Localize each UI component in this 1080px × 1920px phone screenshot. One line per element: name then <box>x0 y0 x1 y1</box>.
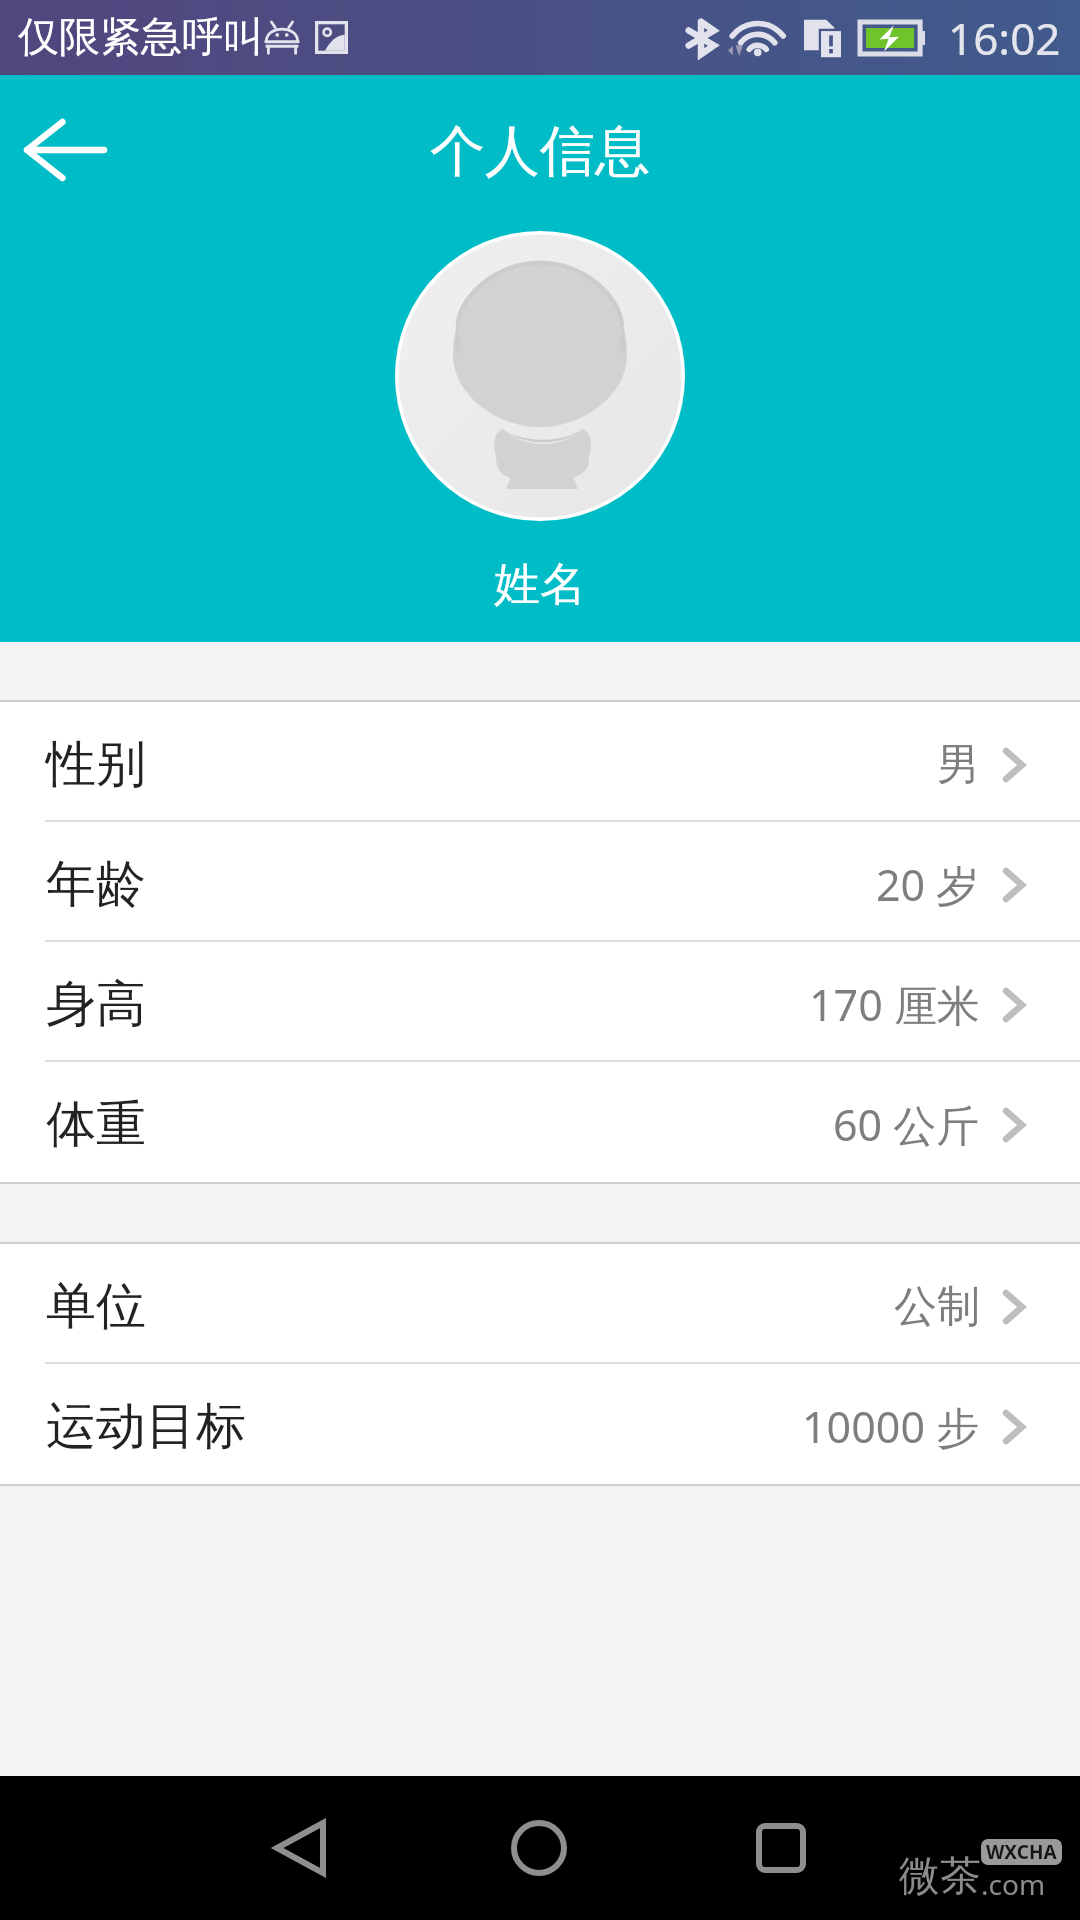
staticText: 10000 步 <box>802 1397 980 1456</box>
staticText: 单位 <box>46 1275 146 1338</box>
button[interactable]: Back <box>0 75 131 220</box>
staticText: WXCHA <box>986 1839 1057 1865</box>
staticText: 公制 <box>894 1280 980 1334</box>
staticText: 微茶 <box>899 1851 981 1903</box>
staticText: 20 岁 <box>876 855 980 914</box>
staticText: 体重 <box>46 1093 146 1156</box>
staticText: 男 <box>937 738 980 792</box>
button[interactable]: Back <box>228 1776 372 1920</box>
staticText: .com <box>981 1865 1046 1903</box>
staticText: 性别 <box>46 733 146 796</box>
staticText: 姓名 <box>494 556 586 614</box>
staticText: 运动目标 <box>46 1395 246 1458</box>
button[interactable]: 性别 <box>0 702 1080 822</box>
button[interactable]: Recent apps <box>709 1776 853 1920</box>
staticText: 年龄 <box>46 853 146 916</box>
button[interactable]: 年龄 <box>0 822 1080 942</box>
staticText: 16:02 <box>948 8 1061 68</box>
button[interactable]: Home <box>467 1776 611 1920</box>
button[interactable]: 体重 <box>0 1062 1080 1182</box>
staticText: 60 公斤 <box>833 1095 980 1154</box>
staticText: 身高 <box>46 973 146 1036</box>
button[interactable]: 单位 <box>0 1244 1080 1364</box>
staticText: 个人信息 <box>430 117 650 186</box>
button[interactable]: 身高 <box>0 942 1080 1062</box>
button[interactable]: 运动目标 <box>0 1364 1080 1484</box>
staticText: 170 厘米 <box>809 975 980 1034</box>
staticText: 仅限紧急呼叫 <box>18 12 264 64</box>
